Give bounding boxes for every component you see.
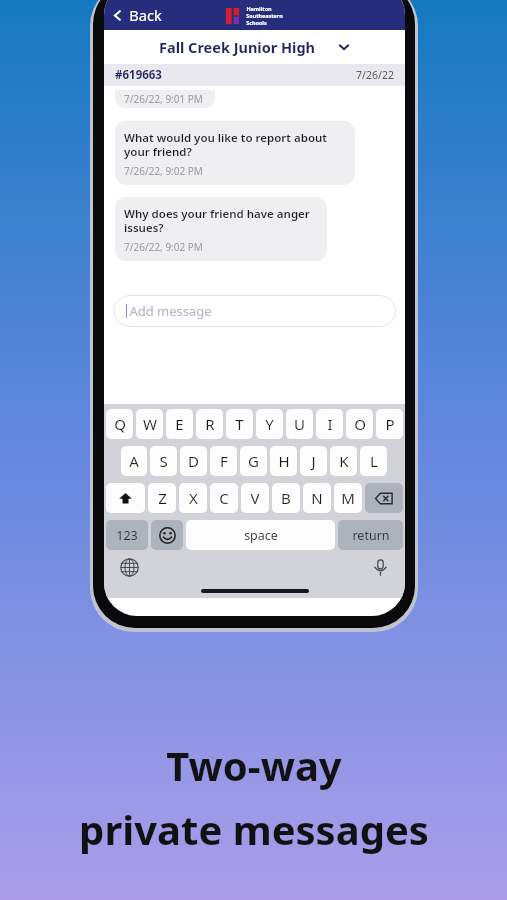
button[interactable]: S bbox=[150, 446, 177, 476]
button[interactable]: space bbox=[186, 520, 335, 550]
button[interactable]: C bbox=[210, 483, 238, 513]
staticText: F bbox=[220, 451, 228, 471]
staticText: return bbox=[352, 527, 390, 544]
staticText: T bbox=[235, 414, 244, 434]
button[interactable]: U bbox=[286, 409, 313, 439]
staticText: #619663 bbox=[115, 67, 162, 83]
staticText: Southeastern bbox=[246, 12, 283, 19]
staticText: P bbox=[385, 414, 395, 434]
staticText: D bbox=[188, 451, 199, 471]
staticText: I bbox=[327, 414, 333, 434]
staticText: 7/26/22, 9:02 PM bbox=[124, 164, 203, 178]
button[interactable]: E bbox=[166, 409, 193, 439]
button[interactable]: M bbox=[334, 483, 362, 513]
staticText: V bbox=[250, 488, 260, 508]
button[interactable]: Backspace bbox=[365, 483, 403, 513]
button[interactable]: T bbox=[226, 409, 253, 439]
button[interactable]: J bbox=[300, 446, 327, 476]
staticText: K bbox=[339, 451, 349, 471]
button[interactable]: L bbox=[360, 446, 387, 476]
button[interactable]: Shift bbox=[106, 483, 145, 513]
staticText: U bbox=[294, 414, 305, 434]
button[interactable]: What would you like to report about your… bbox=[115, 121, 355, 185]
staticText: S bbox=[159, 451, 168, 471]
staticText: G bbox=[248, 451, 259, 471]
staticText: C bbox=[219, 488, 229, 508]
button[interactable]: V bbox=[241, 483, 269, 513]
staticText: 7/26/22 bbox=[356, 68, 394, 82]
staticText: Back bbox=[129, 5, 162, 25]
staticText: E bbox=[175, 414, 184, 434]
button[interactable]: Q bbox=[106, 409, 133, 439]
button[interactable]: P bbox=[376, 409, 403, 439]
button[interactable]: K bbox=[330, 446, 357, 476]
staticText: Hamilton bbox=[246, 5, 272, 12]
staticText: Schools bbox=[246, 19, 267, 26]
staticText: A bbox=[129, 451, 139, 471]
staticText: private messages bbox=[79, 802, 429, 856]
button[interactable]: Back bbox=[111, 5, 162, 25]
staticText: space bbox=[244, 527, 278, 544]
button[interactable]: Emoji bbox=[151, 520, 183, 550]
button[interactable]: Fall Creek Junior High bbox=[104, 30, 405, 64]
staticText: M bbox=[341, 488, 355, 508]
button[interactable]: Why does your friend have anger issues? bbox=[115, 197, 327, 261]
staticText: W bbox=[143, 414, 157, 434]
staticText: J bbox=[311, 451, 316, 471]
staticText: 7/26/22, 9:01 PM bbox=[124, 92, 203, 106]
button[interactable]: D bbox=[180, 446, 207, 476]
staticText: Z bbox=[158, 488, 167, 508]
staticText: R bbox=[205, 414, 215, 434]
button[interactable]: B bbox=[272, 483, 300, 513]
button[interactable]: O bbox=[346, 409, 373, 439]
button[interactable]: Z bbox=[148, 483, 176, 513]
staticText: Two-way bbox=[166, 738, 342, 792]
staticText: L bbox=[370, 451, 378, 471]
button[interactable]: F bbox=[210, 446, 237, 476]
button[interactable]: H bbox=[270, 446, 297, 476]
staticText: Y bbox=[265, 414, 274, 434]
button[interactable]: G bbox=[240, 446, 267, 476]
staticText: H bbox=[278, 451, 290, 471]
staticText: Why does your friend have anger issues? bbox=[124, 206, 318, 235]
button[interactable]: return bbox=[338, 520, 403, 550]
staticText: B bbox=[281, 488, 291, 508]
button[interactable]: N bbox=[303, 483, 331, 513]
button[interactable]: Y bbox=[256, 409, 283, 439]
staticText: Add message bbox=[129, 302, 212, 320]
staticText: Fall Creek Junior High bbox=[159, 37, 315, 57]
button[interactable]: Switch keyboard language bbox=[118, 556, 140, 578]
staticText: What would you like to report about your… bbox=[124, 130, 346, 159]
button[interactable]: I bbox=[316, 409, 343, 439]
staticText: 123 bbox=[116, 527, 138, 544]
button[interactable]: 123 bbox=[106, 520, 148, 550]
staticText: O bbox=[354, 414, 366, 434]
button[interactable]: W bbox=[136, 409, 163, 439]
button[interactable]: Add message bbox=[113, 295, 396, 327]
button[interactable]: Dictation bbox=[369, 556, 391, 578]
staticText: Q bbox=[114, 414, 126, 434]
staticText: X bbox=[189, 488, 198, 508]
staticText: N bbox=[311, 488, 323, 508]
button[interactable]: A bbox=[121, 446, 147, 476]
staticText: 7/26/22, 9:02 PM bbox=[124, 240, 203, 254]
button[interactable]: X bbox=[179, 483, 207, 513]
button[interactable]: R bbox=[196, 409, 223, 439]
